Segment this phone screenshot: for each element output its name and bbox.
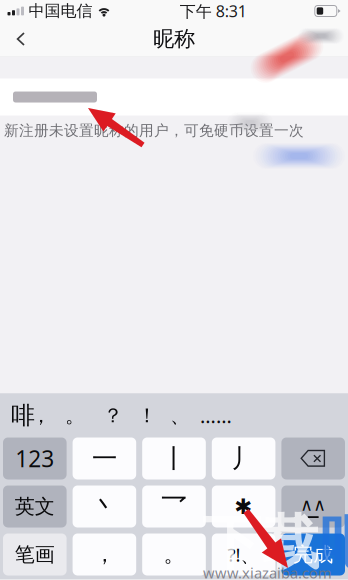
staticText: 。 xyxy=(65,403,85,428)
staticText: 吧 xyxy=(320,507,348,579)
staticText: 新注册未设置昵称的用户，可免硬币设置一次 xyxy=(4,121,304,139)
staticText: ∧∧ xyxy=(300,495,326,515)
staticText: www.xiazaiba.com xyxy=(203,563,332,580)
staticText: ?!、 xyxy=(228,542,260,567)
button[interactable]: ， xyxy=(73,533,136,575)
button[interactable]: Emoticon xyxy=(281,485,345,527)
button[interactable]: 笔画 xyxy=(3,533,67,575)
staticText: ， xyxy=(31,403,51,428)
staticText: 啡 xyxy=(11,401,35,430)
button[interactable]: 123 xyxy=(3,437,67,479)
staticText: …… xyxy=(200,402,232,429)
staticText: 123 xyxy=(15,443,54,473)
staticText: ？ xyxy=(103,403,123,428)
staticText: ， xyxy=(94,541,115,568)
staticText: 。 xyxy=(163,541,184,568)
button[interactable]: ！ xyxy=(130,393,164,437)
button[interactable]: ， xyxy=(24,393,58,437)
staticText: 笔画 xyxy=(15,542,55,567)
staticText: 丿 xyxy=(231,443,256,474)
staticText: 丨 xyxy=(161,443,186,474)
staticText: 昵称 xyxy=(153,26,195,52)
button[interactable]: 完成 xyxy=(281,533,345,575)
button[interactable]: 。 xyxy=(142,533,206,575)
staticText: 一 xyxy=(92,443,117,474)
staticText: ✱ xyxy=(235,494,253,519)
button[interactable]: ？ xyxy=(96,393,130,437)
button[interactable]: ?!、 xyxy=(212,533,275,575)
button[interactable]: ✱ xyxy=(212,485,275,527)
button[interactable]: 、 xyxy=(163,393,197,437)
button[interactable]: 。 xyxy=(58,393,92,437)
button[interactable]: 丨 xyxy=(142,437,206,479)
staticText: ！ xyxy=(137,403,157,428)
button[interactable]: 英文 xyxy=(3,485,67,527)
button[interactable]: 啡 xyxy=(6,393,40,437)
button[interactable]: 丿 xyxy=(212,437,275,479)
staticText: 、 xyxy=(170,403,190,428)
button[interactable]: …… xyxy=(199,393,233,437)
button[interactable]: Back xyxy=(0,23,40,55)
staticText: 乛 xyxy=(161,491,186,522)
staticText: 完成 xyxy=(293,542,333,567)
staticText: 下午 8:31 xyxy=(180,0,247,22)
staticText: 中国电信 xyxy=(28,1,92,21)
staticText: 英文 xyxy=(15,494,55,519)
staticText: 丶 xyxy=(92,491,117,522)
button[interactable] xyxy=(0,78,348,115)
staticText: 下载 xyxy=(202,507,320,579)
button[interactable]: 丶 xyxy=(73,485,136,527)
button[interactable]: Delete xyxy=(281,437,345,479)
button[interactable]: 一 xyxy=(73,437,136,479)
button[interactable]: 乛 xyxy=(142,485,206,527)
